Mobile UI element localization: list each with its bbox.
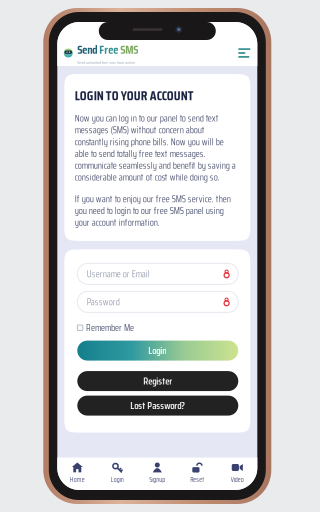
staticText: Password <box>87 295 120 309</box>
button[interactable]: Login <box>77 341 238 361</box>
staticText: Username or Email <box>87 267 150 281</box>
staticText: Signup <box>149 474 165 485</box>
button[interactable]: Lost Password? <box>77 396 238 416</box>
button[interactable]: Home <box>57 458 97 490</box>
staticText: Reset <box>190 474 204 485</box>
staticText: Send unlimited free sms from online. <box>77 59 136 66</box>
staticText: Free <box>99 40 118 59</box>
button[interactable]: Username or Email <box>77 263 238 284</box>
staticText: Login <box>111 474 124 485</box>
staticText: Register <box>143 373 172 389</box>
button[interactable]: Reset <box>177 458 217 490</box>
staticText: Now you can log in to our panel to send … <box>75 111 236 185</box>
button[interactable]: Menu <box>234 44 254 62</box>
staticText: SMS <box>120 40 138 59</box>
staticText: Remember Me <box>86 320 134 335</box>
staticText: Login <box>148 343 167 358</box>
staticText: Send <box>77 40 97 59</box>
staticText: Home <box>70 474 85 485</box>
button[interactable]: Remember Me <box>77 312 134 339</box>
button[interactable]: Register <box>77 371 238 391</box>
button[interactable]: Video <box>217 458 257 490</box>
button[interactable]: Signup <box>137 458 177 490</box>
staticText: Lost Password? <box>130 398 185 413</box>
button[interactable]: Password <box>77 291 238 312</box>
staticText: LOGIN TO YOUR ACCOUNT <box>75 85 194 106</box>
staticText: Video <box>231 474 244 485</box>
staticText: If you want to enjoy our free SMS servic… <box>75 192 231 230</box>
button[interactable]: Login <box>97 458 137 490</box>
